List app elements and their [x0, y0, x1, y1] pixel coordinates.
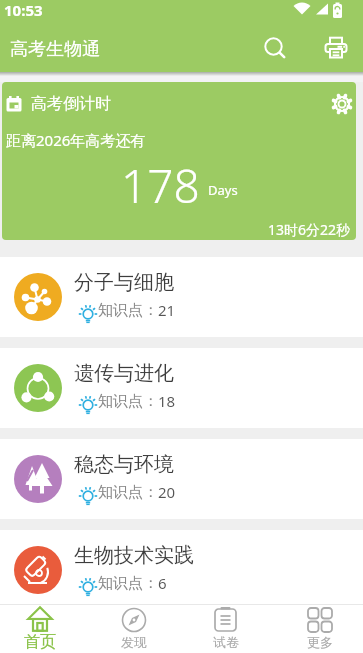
staticText: 18: [158, 391, 176, 411]
staticText: 发现: [121, 634, 147, 650]
staticText: 178: [121, 154, 200, 213]
button[interactable]: 首页: [9, 604, 70, 653]
staticText: 遗传与进化: [74, 361, 174, 386]
staticText: Days: [208, 181, 238, 199]
button[interactable]: [322, 35, 350, 63]
button[interactable]: 发现: [103, 604, 164, 653]
staticText: 13时6分22秒: [268, 220, 351, 239]
button[interactable]: 试卷: [195, 604, 256, 653]
staticText: 高考倒计时: [31, 94, 111, 114]
staticText: 高考生物通: [10, 38, 100, 61]
staticText: 首页: [24, 632, 56, 650]
button[interactable]: 稳态与环境: [0, 439, 363, 519]
staticText: 生物技术实践: [74, 543, 194, 568]
button[interactable]: [261, 34, 291, 64]
staticText: 距离2026年高考还有: [6, 130, 146, 150]
button[interactable]: [328, 90, 356, 118]
staticText: 更多: [307, 634, 333, 650]
button[interactable]: 遗传与进化: [0, 348, 363, 428]
staticText: 知识点：: [98, 574, 158, 593]
button[interactable]: 生物技术实践: [0, 530, 363, 610]
staticText: 试卷: [213, 634, 239, 650]
staticText: 分子与细胞: [74, 270, 174, 295]
staticText: 知识点：: [98, 483, 158, 502]
button[interactable]: 高考倒计时: [2, 82, 356, 240]
staticText: 知识点：: [98, 301, 158, 320]
staticText: 知识点：: [98, 392, 158, 411]
staticText: 稳态与环境: [74, 452, 174, 477]
button[interactable]: 分子与细胞: [0, 257, 363, 337]
staticText: 6: [158, 573, 167, 593]
staticText: 20: [158, 482, 176, 502]
button[interactable]: 更多: [289, 604, 350, 653]
staticText: 21: [158, 300, 176, 320]
staticText: 10:53: [4, 0, 43, 20]
